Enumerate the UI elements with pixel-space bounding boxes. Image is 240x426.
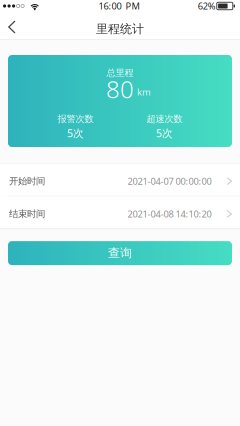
staticText: km [137, 86, 151, 98]
button[interactable]: 查询 [8, 241, 232, 265]
staticText: 报警次数 [57, 113, 93, 125]
staticText: 开始时间 [9, 175, 45, 187]
staticText: 80 [106, 73, 134, 105]
staticText: 结束时间 [9, 208, 45, 220]
staticText: 总里程 [106, 67, 133, 79]
staticText: 查询 [108, 246, 132, 260]
button[interactable]: 开始时间 [0, 164, 240, 196]
staticText: 2021-04-07 00:00:00 [128, 175, 212, 187]
staticText: 2021-04-08 14:10:20 [128, 208, 212, 220]
staticText: 超速次数 [146, 113, 182, 125]
staticText: 16:00 PM [98, 0, 139, 12]
staticText: 5次 [67, 126, 84, 140]
button[interactable]: 结束时间 [0, 196, 240, 228]
staticText: 里程统计 [96, 22, 144, 36]
button[interactable]: Back [0, 18, 26, 40]
staticText: 62% [198, 0, 216, 12]
staticText: 5次 [156, 126, 173, 140]
